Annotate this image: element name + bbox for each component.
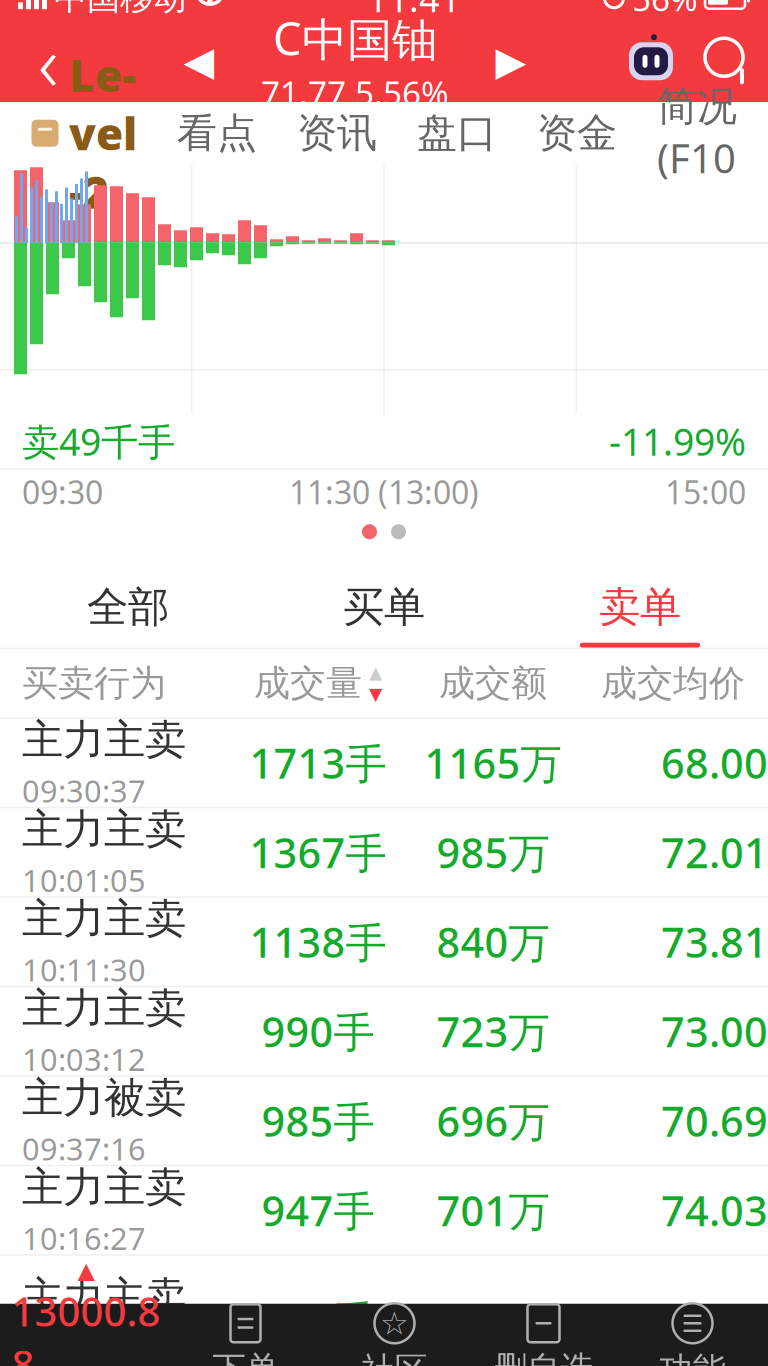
- staticText: 中国移动: [54, 0, 186, 19]
- staticText: 701万: [436, 1183, 549, 1238]
- staticText: 简况(F10: [657, 82, 737, 184]
- staticText: 11:30 (13:00): [289, 470, 479, 513]
- staticText: 71.77 5.56%: [261, 70, 449, 115]
- staticText: 56%: [632, 0, 698, 20]
- staticText: 10:03:12: [22, 1039, 146, 1079]
- button[interactable]: 卖单: [512, 572, 768, 648]
- button[interactable]: 买单: [256, 572, 512, 648]
- staticText: 主力被卖: [22, 1072, 186, 1123]
- staticText: 74.03: [661, 1183, 768, 1238]
- button[interactable]: 资讯: [277, 102, 397, 164]
- staticText: ‹: [38, 10, 58, 113]
- staticText: 09:37:16: [22, 1128, 146, 1169]
- staticText: 主力主卖: [22, 983, 186, 1034]
- staticText: 10:16:27: [22, 1218, 146, 1258]
- button[interactable]: 主力主卖: [0, 719, 768, 807]
- staticText: 下单: [212, 1348, 278, 1366]
- button[interactable]: Level-2: [0, 102, 157, 164]
- button[interactable]: 返回: [0, 22, 96, 100]
- button[interactable]: 主力主卖: [0, 898, 768, 986]
- staticText: Level-2: [69, 46, 137, 221]
- button[interactable]: 智能助手: [614, 22, 688, 100]
- staticText: 723万: [436, 1004, 549, 1059]
- button[interactable]: 主力主卖: [0, 987, 768, 1075]
- staticText: 主力主卖: [22, 1272, 186, 1323]
- staticText: 看点: [177, 109, 257, 158]
- staticText: 990手: [261, 1004, 374, 1059]
- button[interactable]: 主力主卖: [0, 808, 768, 896]
- staticText: 卖49千手: [22, 416, 175, 466]
- staticText: 09:30:37: [22, 770, 146, 811]
- staticText: 09:30: [22, 470, 103, 513]
- staticText: 1138手: [249, 914, 386, 969]
- staticText: 73.00: [661, 1004, 768, 1059]
- button[interactable]: 看点: [157, 102, 277, 164]
- staticText: 1713手: [249, 735, 386, 790]
- staticText: 盘口: [417, 109, 497, 158]
- staticText: ▲: [369, 663, 382, 682]
- staticText: ▼: [369, 684, 382, 704]
- button[interactable]: 上一只股票: [168, 22, 230, 100]
- staticText: 13000.88: [11, 1284, 160, 1366]
- staticText: 1165万: [424, 735, 561, 790]
- button[interactable]: 全部: [0, 572, 256, 648]
- button[interactable]: 主力主卖: [0, 1166, 768, 1254]
- staticText: 买卖行为: [22, 661, 166, 705]
- staticText: 11:41: [367, 0, 461, 22]
- staticText: ▶: [495, 39, 526, 84]
- staticText: 成交量: [254, 661, 362, 705]
- button[interactable]: 下单: [171, 1304, 320, 1366]
- staticText: 资讯: [297, 109, 377, 158]
- staticText: 10:01:05: [22, 860, 146, 900]
- button[interactable]: 简况(F10: [637, 102, 757, 164]
- button[interactable]: 搜索: [688, 22, 768, 100]
- staticText: 1367手: [249, 825, 386, 880]
- staticText: 68.00: [661, 735, 768, 790]
- staticText: 资金: [537, 109, 617, 158]
- button[interactable]: 资金: [517, 102, 637, 164]
- staticText: ◀: [183, 39, 214, 84]
- staticText: 主力主卖: [22, 804, 186, 855]
- button[interactable]: 盘口: [397, 102, 517, 164]
- staticText: 买单: [343, 582, 425, 633]
- staticText: 09:52:41: [22, 1327, 146, 1366]
- button[interactable]: ▲: [1, 1304, 171, 1366]
- staticText: 卖单: [599, 582, 681, 633]
- staticText: 10:11:30: [22, 949, 146, 990]
- staticText: 功能: [659, 1349, 725, 1366]
- staticText: 全部: [87, 582, 169, 633]
- button[interactable]: 主力被卖: [0, 1077, 768, 1165]
- staticText: 947手: [261, 1183, 374, 1238]
- staticText: ▲: [77, 1258, 94, 1283]
- staticText: 72.01: [661, 825, 768, 880]
- staticText: 635万: [436, 1293, 549, 1347]
- staticText: 73.81: [661, 914, 768, 969]
- staticText: 68.50: [661, 1293, 768, 1347]
- staticText: 985手: [261, 1093, 374, 1148]
- staticText: 70.69: [661, 1093, 768, 1148]
- button[interactable]: 下一只股票: [480, 22, 542, 100]
- staticText: 删自选: [494, 1348, 593, 1366]
- staticText: 696万: [436, 1093, 549, 1148]
- staticText: 成交均价: [601, 661, 745, 705]
- staticText: C中国铀: [273, 8, 437, 68]
- staticText: 813手: [261, 1293, 374, 1347]
- staticText: 成交额: [439, 661, 547, 705]
- staticText: 社区: [361, 1349, 427, 1366]
- staticText: 840万: [436, 914, 549, 969]
- staticText: 主力主卖: [22, 893, 186, 944]
- staticText: ☆: [380, 1305, 409, 1341]
- button[interactable]: 功能: [618, 1304, 767, 1366]
- staticText: 985万: [436, 825, 549, 880]
- staticText: -11.99%: [609, 416, 746, 466]
- staticText: 主力主卖: [22, 714, 186, 765]
- staticText: 15:00: [665, 470, 746, 513]
- staticText: 主力主卖: [22, 1162, 186, 1213]
- button[interactable]: 删自选: [469, 1304, 618, 1366]
- button[interactable]: ☆: [320, 1304, 469, 1366]
